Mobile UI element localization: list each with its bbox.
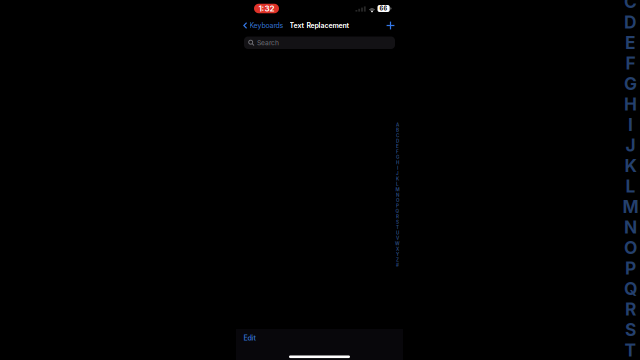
- staticText: M: [622, 196, 638, 217]
- staticText: B: [396, 127, 399, 133]
- staticText: K: [624, 155, 636, 176]
- staticText: P: [625, 258, 636, 279]
- staticText: Search: [257, 39, 279, 47]
- staticText: Z: [396, 257, 399, 263]
- staticText: I: [397, 165, 398, 171]
- staticText: R: [625, 299, 636, 320]
- staticText: G: [624, 73, 637, 94]
- staticText: E: [625, 32, 636, 53]
- staticText: D: [396, 138, 399, 144]
- staticText: C: [396, 133, 399, 138]
- staticText: H: [396, 160, 399, 165]
- staticText: I: [628, 114, 633, 135]
- staticText: H: [624, 94, 637, 115]
- staticText: T: [624, 340, 636, 360]
- staticText: Keyboards: [249, 21, 283, 30]
- staticText: N: [396, 192, 399, 198]
- staticText: S: [396, 219, 399, 225]
- staticText: A: [396, 122, 399, 128]
- staticText: L: [625, 176, 635, 197]
- staticText: J: [396, 171, 399, 176]
- button[interactable]: Edit: [236, 328, 264, 346]
- staticText: S: [625, 319, 636, 340]
- staticText: U: [396, 230, 399, 236]
- staticText: K: [396, 176, 399, 182]
- staticText: E: [396, 144, 399, 149]
- staticText: O: [396, 198, 399, 203]
- staticText: 1:32: [258, 4, 274, 13]
- staticText: Y: [396, 252, 399, 257]
- staticText: O: [624, 237, 637, 258]
- staticText: F: [396, 149, 399, 155]
- staticText: C: [624, 0, 637, 12]
- staticText: G: [396, 154, 399, 160]
- staticText: Edit: [243, 334, 255, 342]
- staticText: M: [395, 187, 399, 192]
- staticText: N: [624, 217, 637, 238]
- staticText: R: [396, 214, 399, 219]
- staticText: Q: [395, 208, 399, 214]
- staticText: W: [395, 241, 400, 246]
- button[interactable]: Keyboards: [236, 17, 283, 34]
- staticText: J: [625, 135, 635, 156]
- staticText: D: [624, 12, 637, 33]
- button[interactable]: Add text replacement: [386, 17, 403, 34]
- staticText: #: [396, 262, 399, 268]
- staticText: 66: [380, 5, 388, 12]
- button[interactable]: Search: [244, 36, 395, 49]
- staticText: Q: [624, 278, 637, 299]
- staticText: F: [625, 53, 635, 74]
- staticText: P: [396, 203, 399, 209]
- staticText: Text Replacement: [289, 21, 349, 30]
- staticText: L: [396, 181, 399, 187]
- staticText: V: [396, 235, 399, 241]
- staticText: X: [396, 246, 399, 252]
- staticText: T: [396, 225, 399, 230]
